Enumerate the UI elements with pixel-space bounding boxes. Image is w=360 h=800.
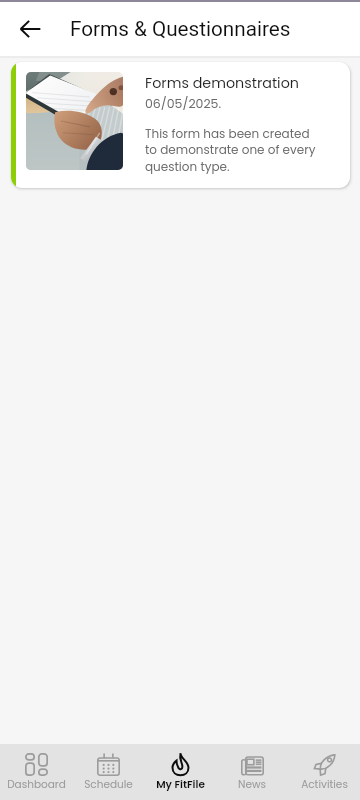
button[interactable]: Forms demonstration [11, 62, 350, 188]
staticText: Forms & Questionnaires [70, 17, 291, 41]
staticText: Activities [301, 777, 348, 792]
staticText: Schedule [84, 777, 133, 792]
button[interactable]: Back [12, 11, 48, 47]
staticText: Forms demonstration [145, 73, 299, 93]
button[interactable]: News [216, 744, 288, 792]
staticText: News [238, 777, 266, 792]
button[interactable]: Schedule [72, 744, 144, 792]
staticText: My FitFile [156, 777, 205, 792]
button[interactable]: Activities [288, 744, 360, 792]
staticText: 06/05/2025. [145, 95, 222, 112]
staticText: Dashboard [7, 777, 66, 792]
staticText: This form has been created to demonstrat… [145, 125, 321, 176]
button[interactable]: Dashboard [0, 744, 72, 792]
button[interactable]: My FitFile [144, 744, 216, 792]
